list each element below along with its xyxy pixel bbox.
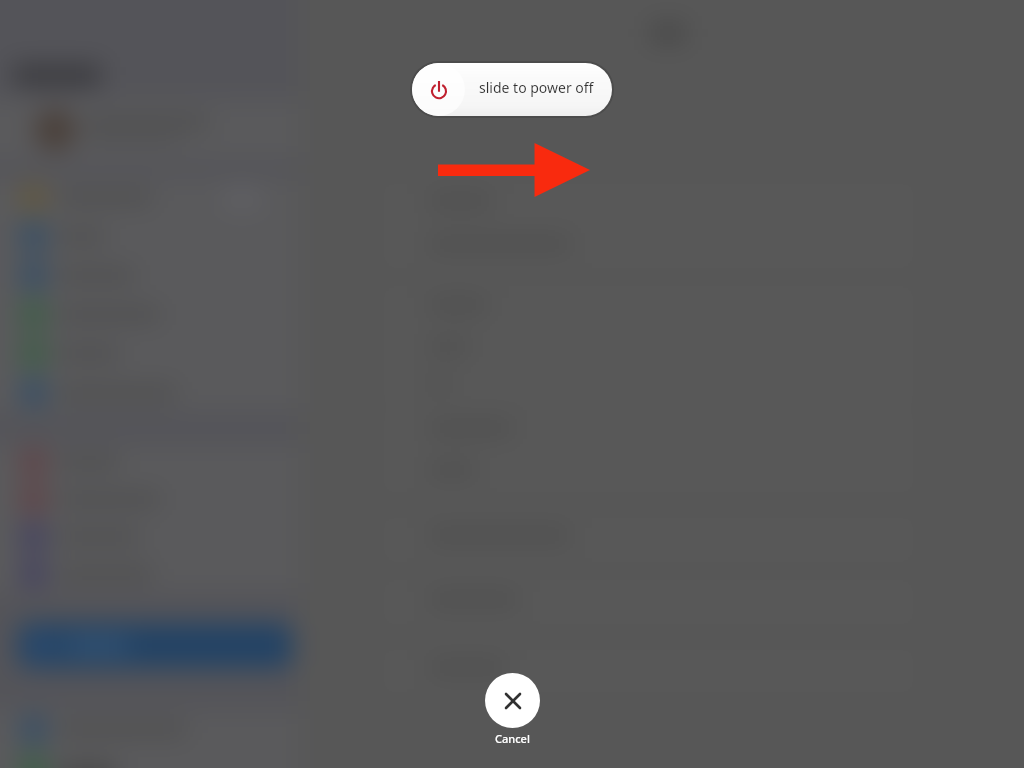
button[interactable]: slide to power off — [412, 63, 612, 116]
staticText: Cancel — [495, 731, 530, 746]
staticText: slide to power off — [479, 78, 594, 97]
button[interactable]: Cancel — [456, 673, 568, 746]
